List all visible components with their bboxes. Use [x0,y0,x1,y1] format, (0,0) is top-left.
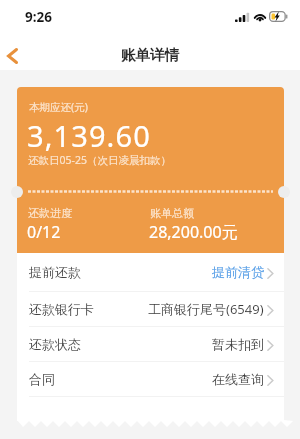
staticText: 工商银行尾号(6549) [148,300,264,318]
staticText: 合同 [29,371,55,387]
staticText: 暂未扣到 [212,336,264,352]
staticText: 还款进度 [28,206,72,220]
staticText: 在线查询 [212,371,264,387]
staticText: 本期应还(元) [29,100,88,114]
staticText: 提前清贷 [212,264,264,280]
staticText: 9:26 [25,8,52,26]
staticText: 28,200.00元 [149,221,238,243]
button[interactable]: 合同 [17,362,284,397]
button[interactable]: 还款银行卡 [17,292,284,327]
button[interactable]: Back [0,40,28,73]
button[interactable]: 还款状态 [17,327,284,362]
button[interactable]: 提前还款 [17,253,284,292]
staticText: 还款银行卡 [29,301,94,317]
staticText: 0/12 [27,221,61,243]
staticText: 账单详情 [121,46,179,64]
staticText: 3,139.60 [27,116,151,155]
staticText: 还款日05-25（次日凌晨扣款） [28,153,171,167]
staticText: 账单总额 [150,206,194,220]
staticText: 还款状态 [29,336,81,352]
staticText: 提前还款 [29,264,81,280]
